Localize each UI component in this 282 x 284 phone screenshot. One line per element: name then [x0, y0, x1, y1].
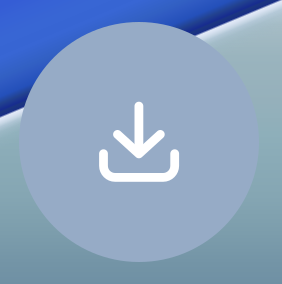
button[interactable]: Download [19, 22, 259, 262]
